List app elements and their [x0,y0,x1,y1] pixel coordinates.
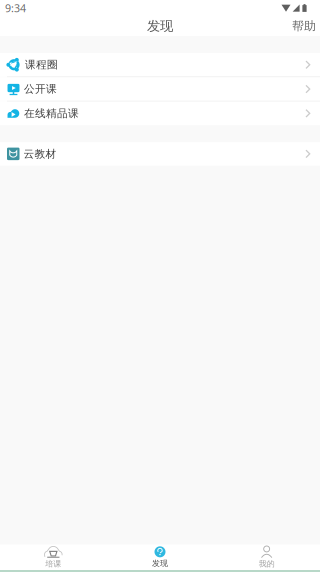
staticText: 发现 [147,18,173,34]
staticText: 公开课 [24,82,57,96]
button[interactable]: 我的 [213,544,320,570]
button[interactable]: 发现 [107,544,213,570]
staticText: 在线精品课 [24,107,79,120]
button[interactable]: 课程圈 [0,53,320,76]
staticText: 培课 [45,559,61,569]
staticText: 发现 [152,558,168,568]
button[interactable]: 云教材 [0,142,320,166]
staticText: 9:34 [5,1,26,15]
button[interactable]: 培课 [0,544,107,570]
staticText: 云教材 [23,147,56,160]
button[interactable]: 公开课 [0,77,320,101]
staticText: 我的 [259,559,275,569]
button[interactable]: 在线精品课 [0,102,320,125]
staticText: 课程圈 [25,58,58,71]
staticText: 帮助 [292,19,316,33]
button[interactable]: 帮助 [282,16,320,36]
